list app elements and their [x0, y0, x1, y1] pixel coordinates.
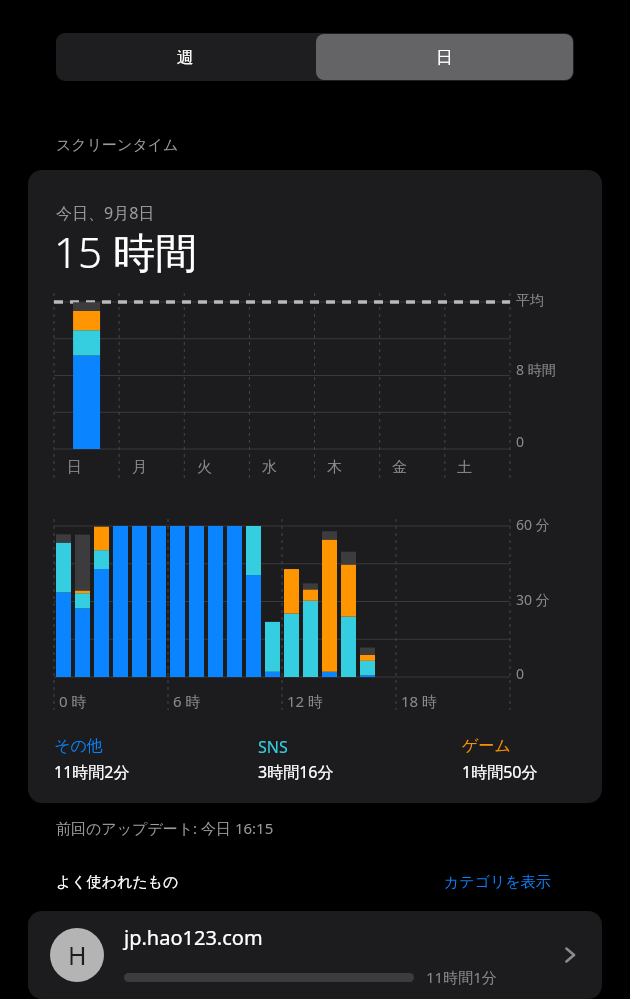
staticText: 水 — [262, 458, 277, 477]
staticText: 0 — [516, 664, 525, 683]
staticText: 15 時間 — [54, 223, 197, 280]
staticText: 8 時間 — [516, 360, 556, 379]
staticText: 今日、9月8日 — [56, 202, 155, 224]
staticText: 火 — [197, 458, 212, 477]
staticText: 11時間2分 — [54, 761, 130, 783]
staticText: 土 — [457, 458, 472, 477]
staticText: カテゴリを表示 — [444, 873, 551, 892]
button[interactable]: 週 — [56, 33, 315, 81]
staticText: スクリーンタイム — [56, 136, 179, 155]
staticText: 日 — [436, 47, 453, 68]
staticText: 前回のアップデート: 今日 16:15 — [56, 818, 274, 838]
other: Show app details — [560, 945, 580, 965]
staticText: よく使われたもの — [56, 873, 179, 892]
staticText: 12 時 — [287, 691, 324, 711]
staticText: 6 時 — [173, 691, 201, 711]
staticText: 11時間1分 — [426, 967, 497, 987]
staticText: その他 — [54, 736, 103, 756]
staticText: ゲーム — [462, 736, 511, 756]
staticText: 0 — [516, 432, 525, 451]
staticText: 18 時 — [401, 691, 438, 711]
button[interactable]: H — [28, 911, 602, 999]
staticText: jp.hao123.com — [124, 924, 263, 951]
staticText: 3時間16分 — [258, 761, 334, 783]
staticText: 平均 — [516, 292, 544, 310]
staticText: 木 — [327, 458, 342, 477]
button[interactable]: 日 — [316, 34, 573, 80]
staticText: 金 — [392, 458, 407, 477]
staticText: 60 分 — [516, 515, 550, 534]
staticText: 1時間50分 — [462, 761, 538, 783]
staticText: H — [68, 938, 87, 972]
staticText: 30 分 — [516, 590, 550, 609]
staticText: SNS — [258, 736, 288, 758]
button[interactable]: カテゴリを表示 — [444, 873, 551, 892]
staticText: 0 時 — [59, 691, 87, 711]
staticText: 日 — [67, 458, 82, 477]
staticText: 週 — [177, 47, 194, 68]
staticText: 月 — [132, 458, 147, 477]
